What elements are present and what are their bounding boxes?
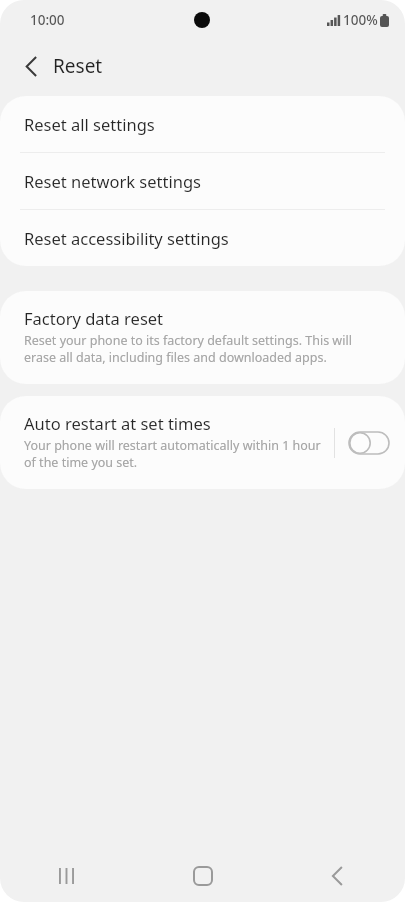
staticText: Reset bbox=[53, 53, 103, 79]
button[interactable]: Back bbox=[270, 850, 405, 902]
staticText: Auto restart at set times bbox=[24, 412, 211, 434]
button[interactable]: Recent apps bbox=[0, 850, 135, 902]
button[interactable]: Auto restart at set times bbox=[0, 396, 334, 489]
button[interactable]: Factory data reset bbox=[0, 291, 405, 384]
button[interactable]: Back bbox=[13, 48, 49, 84]
staticText: Reset network settings bbox=[24, 170, 201, 192]
staticText: Reset all settings bbox=[24, 113, 155, 135]
button[interactable]: Reset accessibility settings bbox=[0, 210, 405, 266]
staticText: Reset accessibility settings bbox=[24, 227, 229, 249]
staticText: 10:00 bbox=[30, 11, 65, 29]
staticText: Reset your phone to its factory default … bbox=[24, 332, 381, 366]
button[interactable]: Reset all settings bbox=[0, 96, 405, 152]
button[interactable]: Home bbox=[135, 850, 270, 902]
staticText: 100% bbox=[343, 11, 378, 29]
button[interactable]: Auto restart toggle bbox=[347, 423, 391, 463]
staticText: Your phone will restart automatically wi… bbox=[24, 437, 324, 471]
staticText: Factory data reset bbox=[24, 307, 164, 329]
button[interactable]: Reset network settings bbox=[0, 153, 405, 209]
